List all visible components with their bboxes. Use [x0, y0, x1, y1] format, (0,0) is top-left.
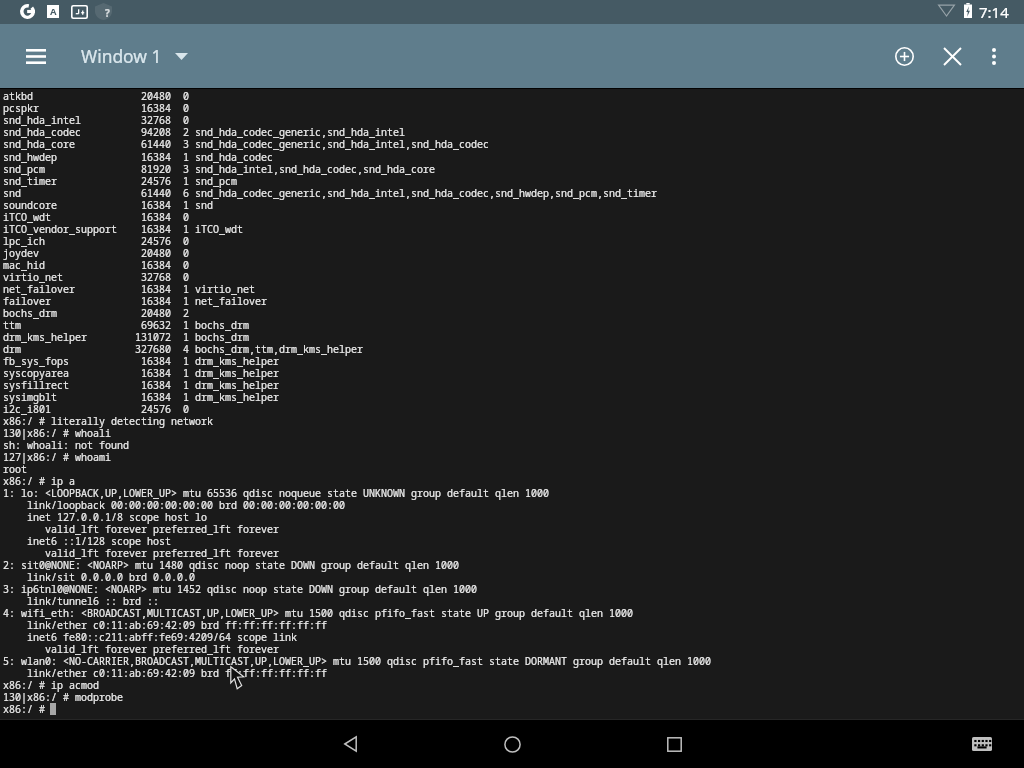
staticText: iTCO_vendor_support 16384 1 iTCO_wdt — [3, 222, 243, 236]
staticText: drm 327680 4 bochs_drm,ttm,drm_kms_helpe… — [3, 342, 363, 356]
staticText: lpc_ich 24576 0 — [3, 234, 189, 248]
staticText: syscopyarea 16384 1 drm_kms_helper — [3, 366, 279, 380]
staticText: x86:/ # — [3, 702, 51, 716]
staticText: valid_lft forever preferred_lft forever — [3, 642, 279, 656]
staticText: soundcore 16384 1 snd — [3, 198, 213, 212]
staticText: x86:/ # ip acmod — [3, 678, 99, 692]
staticText: snd_pcm 81920 3 snd_hda_intel,snd_hda_co… — [3, 162, 435, 176]
button[interactable]: Window 1 — [81, 38, 188, 74]
staticText: snd 61440 6 snd_hda_codec_generic,snd_hd… — [3, 186, 657, 200]
staticText: snd_hda_intel 32768 0 — [3, 113, 189, 127]
staticText: snd_timer 24576 1 snd_pcm — [3, 174, 237, 188]
staticText: 127|x86:/ # whoami — [3, 450, 111, 464]
staticText: pcspkr 16384 0 — [3, 101, 189, 115]
staticText: 7:14 — [979, 2, 1009, 22]
staticText: iTCO_wdt 16384 0 — [3, 210, 189, 224]
staticText: snd_hda_core 61440 3 snd_hda_codec_gener… — [3, 137, 489, 151]
staticText: link/tunnel6 :: brd :: — [3, 594, 159, 608]
button[interactable]: New window — [880, 32, 928, 80]
staticText: valid_lft forever preferred_lft forever — [3, 546, 279, 560]
staticText: bochs_drm 20480 2 — [3, 306, 189, 320]
staticText: ttm 69632 1 bochs_drm — [3, 318, 249, 332]
staticText: inet 127.0.0.1/8 scope host lo — [3, 510, 207, 524]
staticText: valid_lft forever preferred_lft forever — [3, 522, 279, 536]
button[interactable]: Terminal output — [0, 88, 1024, 720]
staticText: failover 16384 1 net_failover — [3, 294, 267, 308]
button[interactable]: Back — [310, 720, 390, 768]
staticText: sysimgblt 16384 1 drm_kms_helper — [3, 390, 279, 404]
staticText: atkbd 20480 0 — [3, 89, 189, 103]
staticText: sh: whoali: not found — [3, 438, 129, 452]
staticText: snd_hwdep 16384 1 snd_hda_codec — [3, 150, 273, 164]
staticText: link/ether c0:11:ab:69:42:09 brd ff:ff:f… — [3, 618, 327, 632]
staticText: inet6 ::1/128 scope host — [3, 534, 171, 548]
staticText: inet6 fe80::c211:abff:fe69:4209/64 scope… — [3, 630, 297, 644]
staticText: joydev 20480 0 — [3, 246, 189, 260]
staticText: link/loopback 00:00:00:00:00:00 brd 00:0… — [3, 498, 345, 512]
button[interactable]: Home — [472, 720, 552, 768]
staticText: link/sit 0.0.0.0 brd 0.0.0.0 — [3, 570, 195, 584]
staticText: 4: wifi_eth: <BROADCAST,MULTICAST,UP,LOW… — [3, 606, 633, 620]
staticText: x86:/ # ip a — [3, 474, 75, 488]
staticText: 3: ip6tnl0@NONE: <NOARP> mtu 1452 qdisc … — [3, 582, 477, 596]
staticText: ? — [105, 6, 110, 20]
button[interactable]: More options — [970, 32, 1018, 80]
staticText: link/ether c0:11:ab:69:42:09 brd ff:ff:f… — [3, 666, 327, 680]
staticText: 2: sit0@NONE: <NOARP> mtu 1480 qdisc noo… — [3, 558, 459, 572]
button[interactable]: Open navigation drawer — [12, 32, 60, 80]
staticText: i2c_i801 24576 0 — [3, 402, 189, 416]
staticText: A — [50, 5, 57, 18]
staticText: drm_kms_helper 131072 1 bochs_drm — [3, 330, 249, 344]
staticText: Window 1 — [81, 44, 162, 68]
button[interactable]: Close window — [928, 32, 976, 80]
staticText: fb_sys_fops 16384 1 drm_kms_helper — [3, 354, 279, 368]
staticText: mac_hid 16384 0 — [3, 258, 189, 272]
staticText: snd_hda_codec 94208 2 snd_hda_codec_gene… — [3, 125, 405, 139]
staticText: 130|x86:/ # modprobe — [3, 690, 123, 704]
staticText: sysfillrect 16384 1 drm_kms_helper — [3, 378, 279, 392]
staticText: x86:/ # literally detecting network — [3, 414, 213, 428]
staticText: 1: lo: <LOOPBACK,UP,LOWER_UP> mtu 65536 … — [3, 486, 549, 500]
button[interactable]: Recent apps — [634, 720, 714, 768]
button[interactable]: Switch keyboard — [956, 720, 1008, 768]
staticText: 5: wlan0: <NO-CARRIER,BROADCAST,MULTICAS… — [3, 654, 711, 668]
staticText: virtio_net 32768 0 — [3, 270, 189, 284]
staticText: net_failover 16384 1 virtio_net — [3, 282, 255, 296]
staticText: 130|x86:/ # whoali — [3, 426, 111, 440]
staticText: root — [3, 462, 27, 476]
